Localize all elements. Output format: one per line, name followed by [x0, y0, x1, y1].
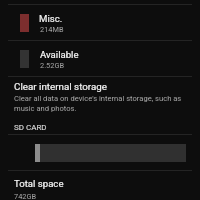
- staticText: 2.52GB: [40, 61, 65, 70]
- staticText: Total space: [14, 178, 64, 189]
- staticText: Available: [40, 49, 79, 60]
- staticText: Clear all data on device's internal stor…: [14, 94, 186, 113]
- staticText: 742GB: [14, 192, 37, 200]
- button[interactable]: Available: [0, 41, 200, 76]
- button[interactable]: Clear internal storage: [0, 77, 200, 117]
- button[interactable]: Misc.: [0, 5, 200, 40]
- staticText: Misc.: [39, 13, 63, 24]
- staticText: SD CARD: [14, 123, 47, 132]
- staticText: Clear internal storage: [14, 81, 108, 92]
- staticText: 214MB: [40, 25, 64, 34]
- button[interactable]: Total space: [0, 172, 200, 200]
